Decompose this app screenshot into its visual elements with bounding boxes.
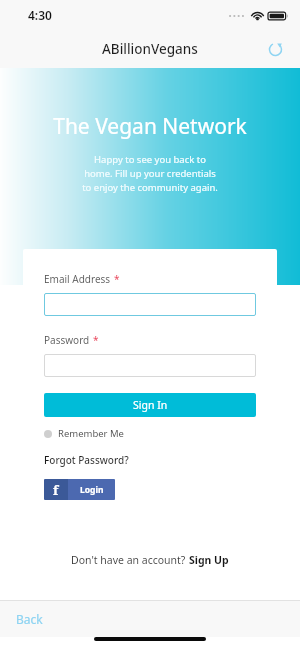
button[interactable] [44,293,256,316]
button[interactable]: Refresh [262,36,288,62]
staticText: ABillionVegans [102,40,198,58]
staticText: f [53,481,59,499]
staticText: Don't have an account? [71,553,189,567]
staticText: 4:30 [28,7,52,23]
button[interactable]: Sign In [44,393,256,417]
button[interactable]: Remember Me [44,427,124,440]
staticText: Sign In [133,398,168,412]
staticText: The Vegan Network [53,112,247,141]
staticText: Password [44,333,90,347]
staticText: Email Address [44,272,111,286]
staticText: Happy to see you back to home. Fill up y… [82,153,218,194]
staticText: Remember Me [58,427,124,440]
button[interactable]: f [44,479,115,500]
staticText: * [114,272,120,286]
staticText: Login [80,484,104,496]
button[interactable] [44,354,256,377]
button[interactable]: Sign Up [189,553,229,567]
staticText: * [93,333,99,347]
button[interactable]: Back [16,611,43,627]
button[interactable]: Forgot Password? [44,453,129,467]
